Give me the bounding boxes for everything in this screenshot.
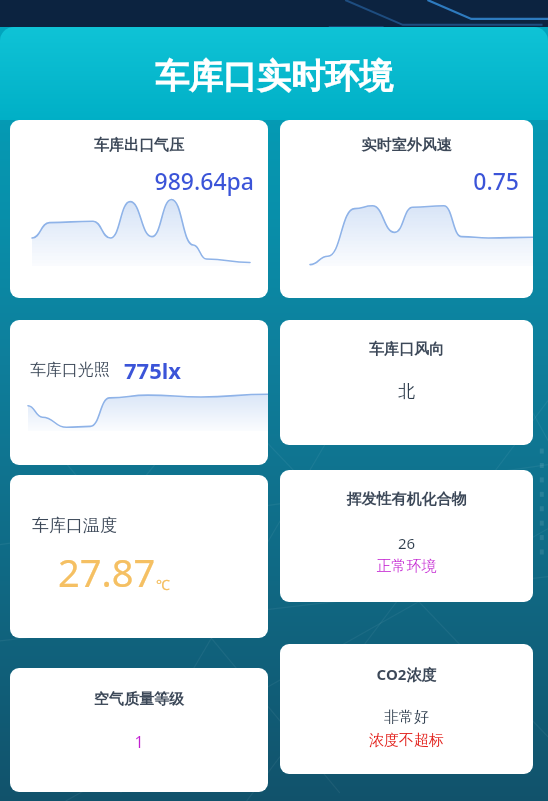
staticText: 挥发性有机化合物: [280, 490, 533, 509]
staticText: 0.75: [280, 165, 519, 196]
staticText: 空气质量等级: [10, 690, 268, 709]
staticText: 浓度不超标: [280, 731, 533, 750]
button[interactable]: 车库口风向: [280, 320, 533, 445]
staticText: 非常好: [280, 708, 533, 727]
staticText: 车库出口气压: [10, 136, 268, 155]
button[interactable]: 车库口温度: [10, 475, 268, 638]
staticText: 989.64pa: [10, 165, 254, 196]
button[interactable]: 空气质量等级: [10, 668, 268, 792]
staticText: 775lx: [124, 355, 182, 385]
staticText: 实时室外风速: [280, 136, 533, 155]
button[interactable]: 实时室外风速: [280, 120, 533, 298]
button[interactable]: CO2浓度: [280, 644, 533, 774]
staticText: 正常环境: [280, 557, 533, 576]
staticText: 北: [280, 381, 533, 402]
button[interactable]: 挥发性有机化合物: [280, 470, 533, 602]
staticText: 车库口光照: [30, 360, 110, 380]
staticText: 车库口实时环境: [0, 55, 548, 98]
button[interactable]: 车库出口气压: [10, 120, 268, 298]
staticText: 车库口温度: [32, 515, 117, 536]
staticText: 26: [280, 533, 533, 553]
staticText: 车库口风向: [280, 340, 533, 359]
staticText: 27.87: [58, 546, 156, 598]
staticText: ℃: [156, 575, 170, 594]
staticText: 1: [10, 731, 268, 753]
button[interactable]: 车库口光照: [10, 320, 268, 465]
staticText: CO2浓度: [280, 664, 533, 684]
